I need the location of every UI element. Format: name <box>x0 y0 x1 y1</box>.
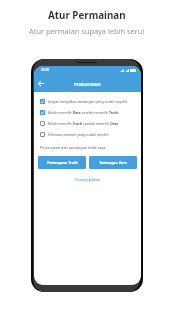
button[interactable]: Back <box>36 78 46 88</box>
button[interactable]: Jangan tampilkan tantangan yang sudah te… <box>38 96 137 107</box>
staticText: Boleh memilih Dare setelah memilih Truth <box>48 110 119 115</box>
staticText: Pertanyaan dan tantangan milik saya: <box>40 145 107 150</box>
staticText: Atur Permainan <box>48 9 126 22</box>
button[interactable]: Tantangan Dare <box>89 156 137 169</box>
button[interactable]: Pertanyaan Truth <box>38 156 86 169</box>
staticText: 09.38 <box>41 68 50 72</box>
staticText: Eliminasi pemain yang sudah terpilih <box>48 132 109 137</box>
staticText: Tantangan Dare <box>99 160 127 165</box>
staticText: Pertanyaan Truth <box>47 160 78 165</box>
button[interactable]: Boleh memilih Dare setelah memilih Truth <box>38 107 137 118</box>
button[interactable]: Boleh memilih Truth setelah memilih Dare <box>38 118 137 129</box>
staticText: Atur permaian supaya lebih seru! <box>29 26 145 36</box>
button[interactable]: Eliminasi pemain yang sudah terpilih <box>38 129 137 140</box>
staticText: Jangan tampilkan tantangan yang sudah te… <box>48 99 128 104</box>
staticText: PENGATURAN <box>74 82 101 87</box>
staticText: Boleh memilih Truth setelah memilih Dare <box>48 121 119 126</box>
button[interactable]: Tentang Aplikasi <box>73 176 103 182</box>
